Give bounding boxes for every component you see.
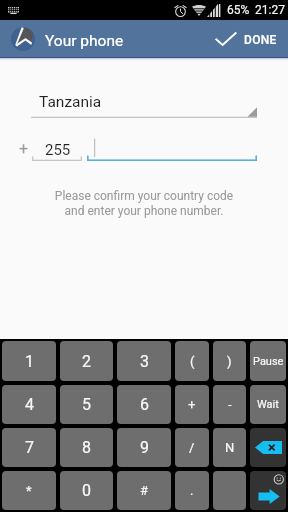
button[interactable]: 3 <box>117 341 171 381</box>
staticText: . <box>190 483 194 498</box>
staticText: Pause <box>253 355 284 368</box>
staticText: Tanzania <box>39 93 102 111</box>
staticText: ) <box>227 354 232 369</box>
staticText: Your phone <box>45 32 124 50</box>
staticText: 21:27 <box>255 3 285 17</box>
staticText: N <box>225 440 235 455</box>
staticText: / <box>189 440 195 455</box>
staticText: 0 <box>82 481 91 500</box>
button[interactable] <box>213 471 246 510</box>
button[interactable]: * <box>2 471 56 510</box>
button[interactable]: ( <box>175 341 209 381</box>
staticText: Wait <box>257 398 279 411</box>
staticText: 4 <box>25 395 34 414</box>
staticText: 1 <box>25 352 34 371</box>
button[interactable]: / <box>175 428 209 467</box>
button[interactable]: Delete <box>250 428 286 467</box>
button[interactable]: 5 <box>60 385 113 424</box>
button[interactable]: 7 <box>2 428 56 467</box>
button[interactable]: # <box>117 471 171 510</box>
button[interactable]: N <box>213 428 246 467</box>
button[interactable]: . <box>175 471 209 510</box>
button[interactable] <box>87 137 257 161</box>
button[interactable]: + <box>175 385 209 424</box>
staticText: 65% <box>227 3 250 17</box>
button[interactable]: 2 <box>60 341 113 381</box>
button[interactable]: ) <box>213 341 246 381</box>
button[interactable]: Enter <box>250 471 286 510</box>
staticText: + <box>19 139 29 158</box>
staticText: 7 <box>25 438 34 457</box>
button[interactable]: Pause <box>250 341 286 381</box>
button[interactable]: 9 <box>117 428 171 467</box>
staticText: - <box>228 397 232 412</box>
button[interactable]: Wait <box>250 385 286 424</box>
button[interactable]: 6 <box>117 385 171 424</box>
button[interactable]: DONE <box>206 25 288 52</box>
staticText: 9 <box>140 438 149 457</box>
staticText: DONE <box>244 33 277 47</box>
button[interactable]: 255 <box>32 137 82 161</box>
staticText: * <box>26 483 32 498</box>
staticText: 255 <box>45 141 71 159</box>
staticText: + <box>188 397 196 412</box>
staticText: 3 <box>140 352 149 371</box>
staticText: 5 <box>82 395 91 414</box>
staticText: 6 <box>140 395 149 414</box>
staticText: ( <box>190 354 195 369</box>
staticText: # <box>140 483 149 498</box>
button[interactable]: 0 <box>60 471 113 510</box>
button[interactable]: - <box>213 385 246 424</box>
button[interactable]: 1 <box>2 341 56 381</box>
staticText: 2 <box>82 352 91 371</box>
staticText: Please confirm your country code and ent… <box>0 189 288 218</box>
button[interactable]: 8 <box>60 428 113 467</box>
button[interactable]: 4 <box>2 385 56 424</box>
staticText: 8 <box>82 438 91 457</box>
button[interactable]: Tanzania <box>31 89 257 118</box>
